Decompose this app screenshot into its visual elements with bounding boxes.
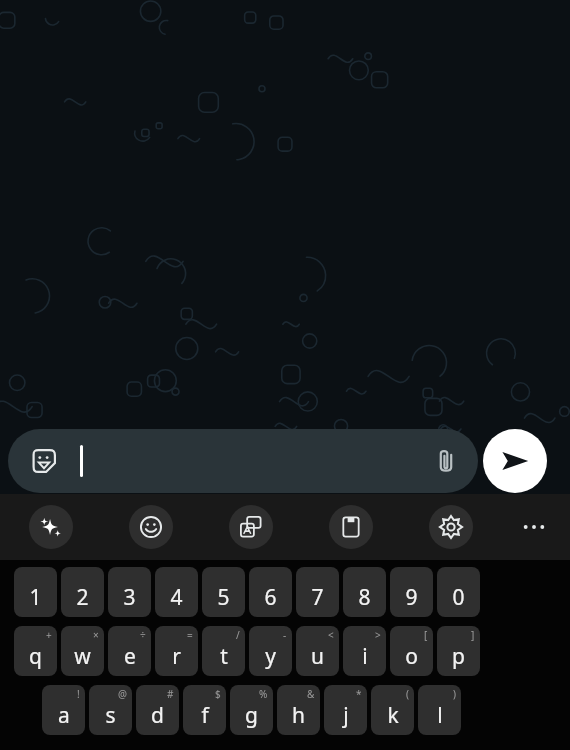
staticText: + — [46, 628, 52, 642]
button[interactable]: = — [155, 626, 198, 676]
staticText: < — [328, 628, 334, 642]
staticText: t — [220, 642, 228, 671]
button[interactable]: Settings — [429, 505, 473, 549]
button[interactable]: 6 — [249, 567, 292, 617]
staticText: ! — [77, 687, 80, 701]
button[interactable]: 7 — [296, 567, 339, 617]
staticText: > — [375, 628, 381, 642]
staticText: 2 — [76, 583, 89, 612]
button[interactable]: 1 — [14, 567, 57, 617]
button[interactable]: Stickers — [24, 441, 64, 481]
staticText: * — [356, 687, 362, 701]
button[interactable]: Send — [483, 429, 547, 493]
staticText: / — [236, 628, 240, 642]
staticText: @ — [118, 687, 127, 701]
staticText: = — [187, 628, 193, 642]
button[interactable]: # — [136, 685, 179, 735]
staticText: u — [311, 642, 324, 671]
button[interactable]: 5 — [202, 567, 245, 617]
staticText: w — [74, 642, 91, 671]
button[interactable]: / — [202, 626, 245, 676]
button[interactable]: > — [343, 626, 386, 676]
button[interactable]: Stickers — [8, 429, 478, 493]
staticText: $ — [215, 687, 221, 701]
staticText: y — [265, 642, 276, 671]
button[interactable]: 3 — [108, 567, 151, 617]
button[interactable]: 4 — [155, 567, 198, 617]
staticText: a — [58, 701, 70, 730]
staticText: q — [29, 642, 42, 671]
button[interactable]: Attach — [424, 439, 468, 483]
staticText: ( — [406, 687, 409, 701]
staticText: & — [307, 687, 315, 701]
staticText: e — [124, 642, 136, 671]
button[interactable]: More options — [512, 505, 556, 549]
staticText: d — [151, 701, 164, 730]
staticText: i — [362, 642, 368, 671]
staticText: × — [93, 628, 99, 642]
staticText: [ — [424, 628, 428, 642]
staticText: 1 — [29, 583, 42, 612]
button[interactable]: 2 — [61, 567, 104, 617]
staticText: ] — [471, 628, 475, 642]
staticText: 5 — [217, 583, 230, 612]
button[interactable]: 9 — [390, 567, 433, 617]
staticText: 0 — [452, 583, 465, 612]
button[interactable]: × — [61, 626, 104, 676]
staticText: r — [172, 642, 181, 671]
staticText: # — [167, 687, 174, 701]
staticText: 3 — [123, 583, 136, 612]
staticText: f — [201, 701, 209, 730]
button[interactable]: Emoji — [129, 505, 173, 549]
staticText: - — [283, 628, 287, 642]
staticText: o — [405, 642, 418, 671]
button[interactable]: 8 — [343, 567, 386, 617]
staticText: 7 — [311, 583, 324, 612]
button[interactable]: ! — [42, 685, 85, 735]
staticText: g — [245, 701, 258, 730]
staticText: ÷ — [140, 628, 146, 642]
button[interactable]: Translate — [229, 505, 273, 549]
staticText: 8 — [358, 583, 371, 612]
button[interactable]: & — [277, 685, 320, 735]
button[interactable]: AI assist — [29, 505, 73, 549]
staticText: k — [387, 701, 399, 730]
button[interactable]: 0 — [437, 567, 480, 617]
button[interactable]: - — [249, 626, 292, 676]
button[interactable]: [ — [390, 626, 433, 676]
staticText: 6 — [264, 583, 277, 612]
staticText: % — [259, 687, 268, 701]
button[interactable]: % — [230, 685, 273, 735]
button[interactable]: ( — [371, 685, 414, 735]
staticText: s — [105, 701, 116, 730]
button[interactable]: < — [296, 626, 339, 676]
button[interactable]: ÷ — [108, 626, 151, 676]
button[interactable]: + — [14, 626, 57, 676]
button[interactable]: Clipboard — [329, 505, 373, 549]
button[interactable]: ) — [418, 685, 461, 735]
staticText: p — [452, 642, 465, 671]
staticText: ) — [453, 687, 456, 701]
staticText: 4 — [170, 583, 183, 612]
button[interactable]: $ — [183, 685, 226, 735]
staticText: 9 — [405, 583, 418, 612]
button[interactable]: ] — [437, 626, 480, 676]
staticText: j — [343, 701, 349, 730]
button[interactable]: * — [324, 685, 367, 735]
staticText: h — [292, 701, 305, 730]
button[interactable]: @ — [89, 685, 132, 735]
staticText: l — [437, 701, 443, 730]
